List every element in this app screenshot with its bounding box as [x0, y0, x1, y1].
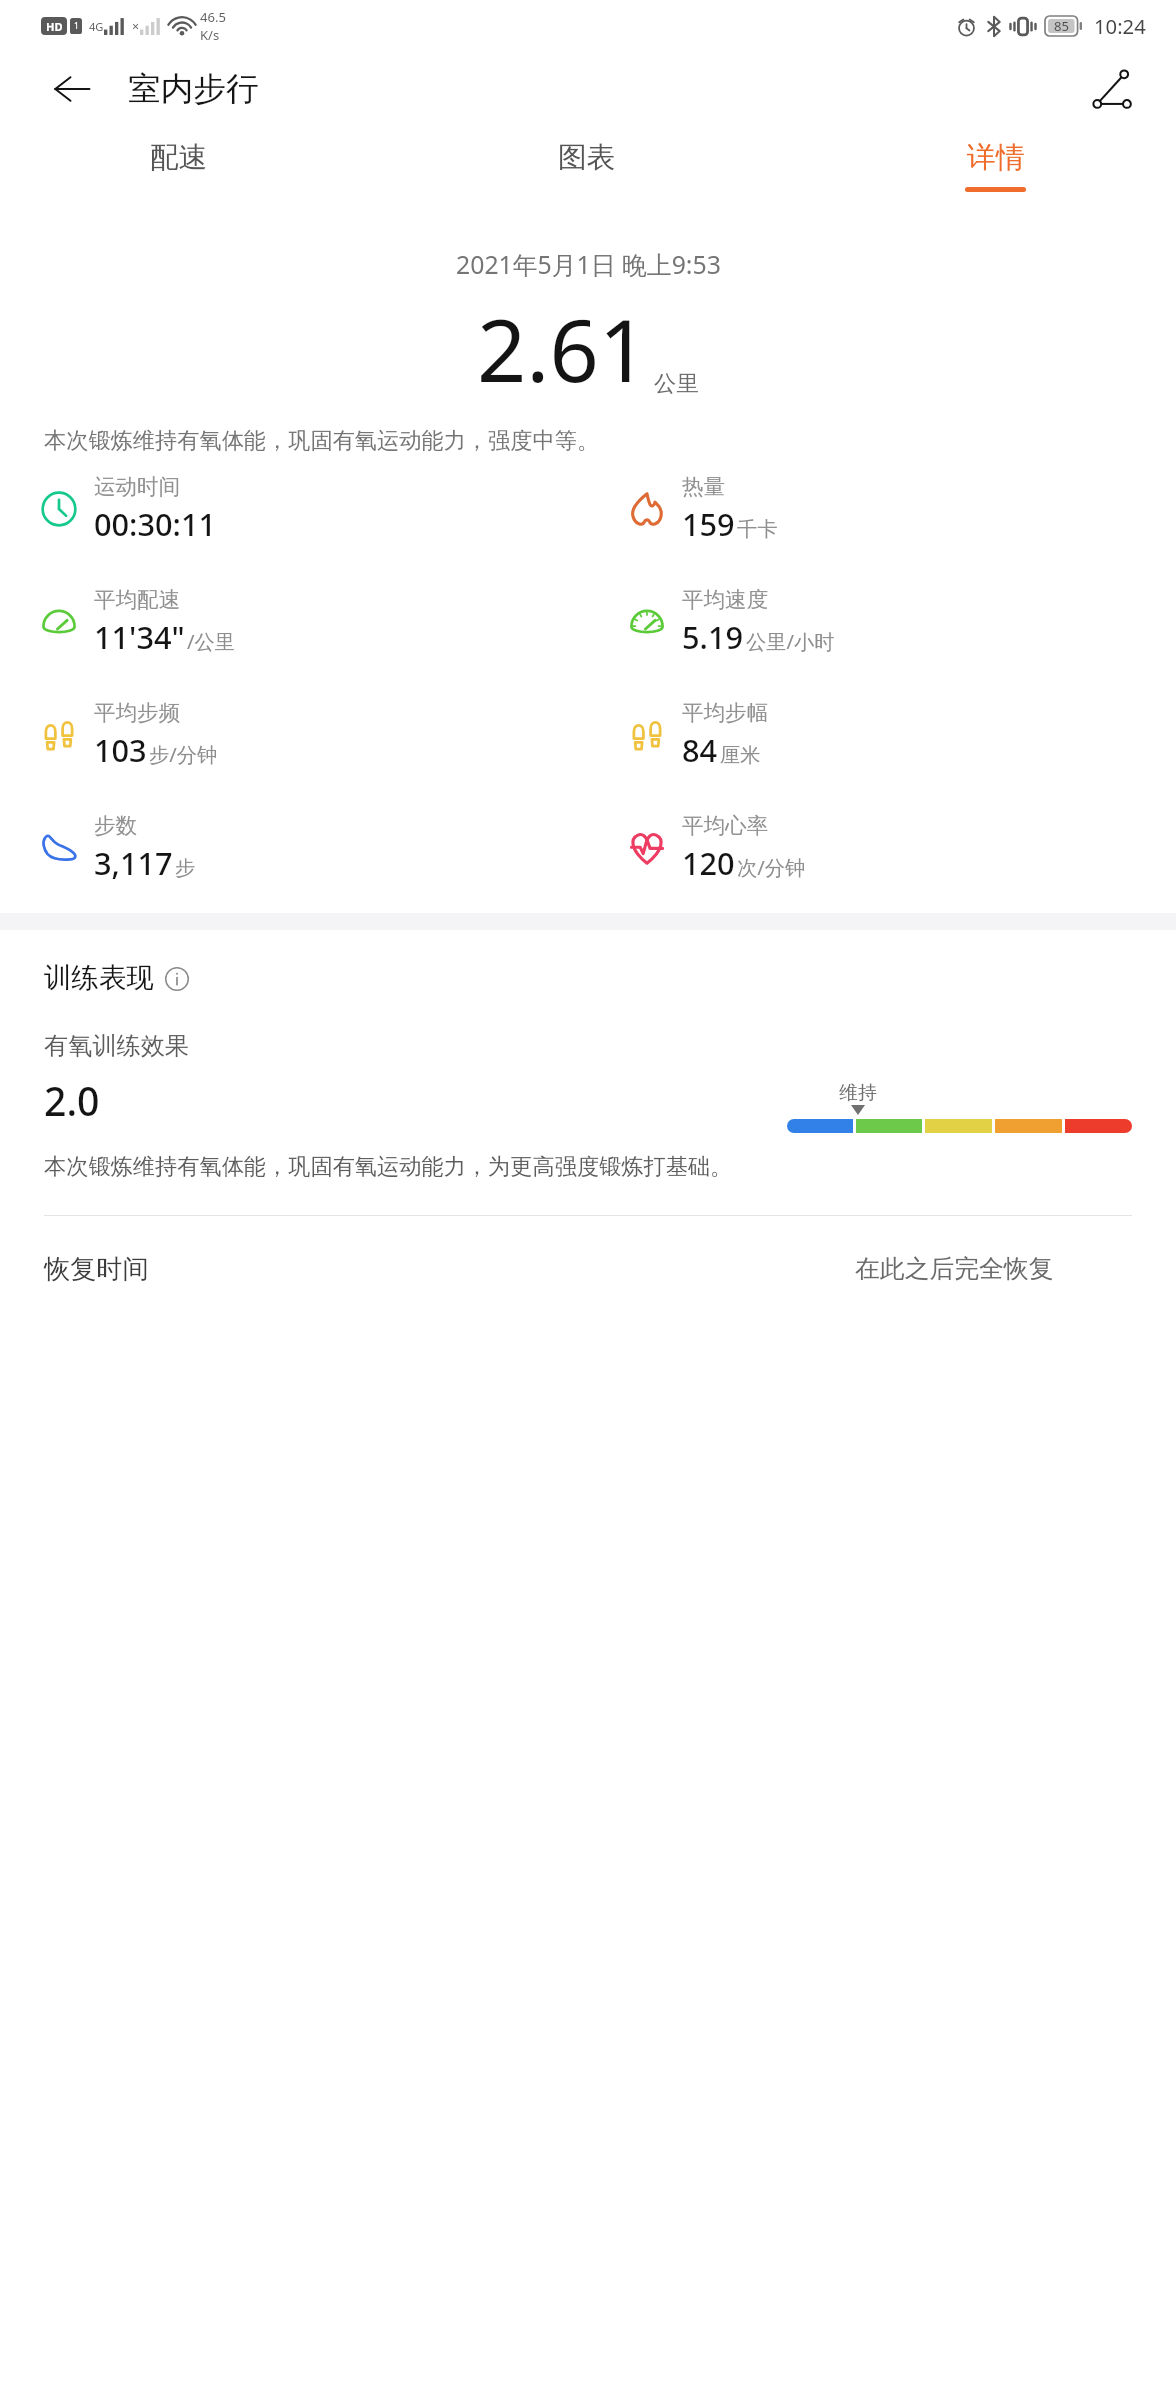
button[interactable]: 步数 — [0, 812, 588, 884]
button[interactable]: Share — [1085, 62, 1139, 116]
staticText: 本次锻炼维持有氧体能，巩固有氧运动能力，强度中等。 — [44, 427, 1132, 455]
button[interactable]: 运动时间 — [0, 473, 588, 545]
staticText: 本次锻炼维持有氧体能，巩固有氧运动能力，为更高强度锻炼打基础。 — [44, 1153, 1132, 1181]
staticText: 在此之后完全恢复 — [855, 1253, 1054, 1284]
staticText: 85 — [1054, 17, 1069, 35]
staticText: 3,117 — [94, 842, 173, 884]
staticText: 120 — [682, 842, 735, 884]
staticText: 00:30:11 — [94, 503, 217, 545]
staticText: 平均速度 — [682, 586, 769, 613]
staticText: 平均心率 — [682, 812, 769, 839]
staticText: 平均配速 — [94, 586, 181, 613]
staticText: 公里 — [654, 370, 699, 398]
button[interactable]: 热量 — [588, 473, 1176, 545]
button[interactable]: Info — [164, 966, 190, 992]
staticText: 1 — [74, 20, 79, 32]
staticText: 84 — [682, 729, 718, 771]
button[interactable]: 平均步幅 — [588, 699, 1176, 771]
staticText: 平均步频 — [94, 699, 181, 726]
staticText: 步数 — [94, 812, 138, 839]
staticText: 训练表现 — [44, 961, 154, 996]
staticText: 2.0 — [44, 1074, 100, 1127]
staticText: 11'34" — [94, 616, 185, 658]
staticText: 恢复时间 — [44, 1253, 149, 1286]
staticText: 步 — [175, 855, 196, 881]
staticText: 图表 — [558, 139, 616, 175]
staticText: 2021年5月1日 晚上9:53 — [456, 247, 721, 281]
staticText: 运动时间 — [94, 473, 181, 500]
button[interactable]: 平均配速 — [0, 586, 588, 658]
button[interactable]: Back — [47, 64, 97, 114]
staticText: 103 — [94, 729, 147, 771]
button[interactable]: 平均心率 — [588, 812, 1176, 884]
staticText: 平均步幅 — [682, 699, 769, 726]
staticText: 4G — [89, 19, 104, 34]
staticText: HD — [46, 19, 63, 34]
staticText: /公里 — [187, 627, 236, 655]
button[interactable]: 平均速度 — [588, 586, 1176, 658]
staticText: 详情 — [967, 139, 1025, 175]
staticText: 千卡 — [737, 516, 778, 542]
staticText: × — [132, 18, 140, 35]
staticText: 46.5 — [200, 8, 226, 26]
staticText: K/s — [200, 26, 220, 44]
button[interactable]: 平均步频 — [0, 699, 588, 771]
button[interactable]: 图表 — [558, 127, 616, 212]
staticText: 次/分钟 — [737, 853, 806, 881]
staticText: 有氧训练效果 — [44, 1031, 190, 1061]
staticText: 5.19 — [682, 616, 744, 658]
staticText: 厘米 — [720, 742, 761, 768]
staticText: 2.61 — [477, 290, 649, 407]
button[interactable]: 恢复时间 — [44, 1253, 1132, 1286]
staticText: 公里/小时 — [746, 627, 835, 655]
button[interactable]: 详情 — [965, 127, 1026, 212]
staticText: 步/分钟 — [149, 740, 218, 768]
staticText: 配速 — [150, 139, 208, 175]
staticText: 10:24 — [1094, 12, 1146, 40]
staticText: 159 — [682, 503, 735, 545]
staticText: 维持 — [839, 1081, 877, 1105]
staticText: 热量 — [682, 473, 726, 500]
staticText: 室内步行 — [128, 69, 259, 110]
button[interactable]: 配速 — [150, 127, 208, 212]
